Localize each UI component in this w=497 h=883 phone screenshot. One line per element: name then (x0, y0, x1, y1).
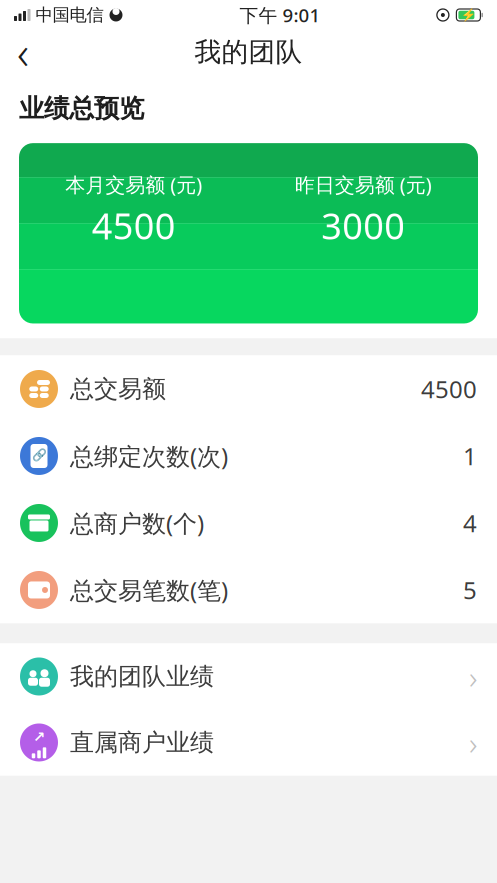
staticText: 总交易笔数(笔) (70, 574, 228, 606)
staticText: 总绑定次数(次) (70, 440, 228, 472)
button[interactable]: ↗ (0, 709, 497, 775)
staticText: 5 (463, 574, 477, 606)
button[interactable]: 我的团队业绩 (0, 643, 497, 709)
staticText: 1 (463, 440, 477, 472)
staticText: ‹ (17, 22, 29, 82)
button[interactable]: 🔗 (0, 422, 497, 489)
staticText: › (469, 721, 477, 764)
staticText: 4 (463, 507, 477, 539)
staticText: 4500 (92, 202, 176, 249)
staticText: 🔗 (31, 448, 46, 462)
staticText: ⚡ (461, 8, 476, 22)
staticText: 下午 9:01 (239, 3, 320, 27)
staticText: 总商户数(个) (70, 507, 204, 539)
staticText: 我的团队业绩 (70, 662, 214, 691)
button[interactable]: 总交易笔数(笔) (0, 556, 497, 623)
staticText: 直属商户业绩 (70, 728, 214, 757)
button[interactable]: 总商户数(个) (0, 489, 497, 556)
staticText: 业绩总预览 (19, 93, 144, 124)
button[interactable]: 返回 (0, 30, 46, 74)
staticText: 本月交易额 (元) (65, 171, 202, 198)
staticText: 总交易额 (70, 374, 166, 404)
staticText: 3000 (321, 202, 405, 249)
staticText: ↗ (33, 729, 45, 745)
staticText: 中国电信 (35, 4, 103, 26)
button[interactable]: 总交易额 (0, 355, 497, 422)
staticText: 4500 (421, 373, 477, 405)
staticText: 我的团队 (194, 36, 302, 68)
staticText: 昨日交易额 (元) (295, 171, 432, 198)
staticText: › (469, 655, 477, 698)
